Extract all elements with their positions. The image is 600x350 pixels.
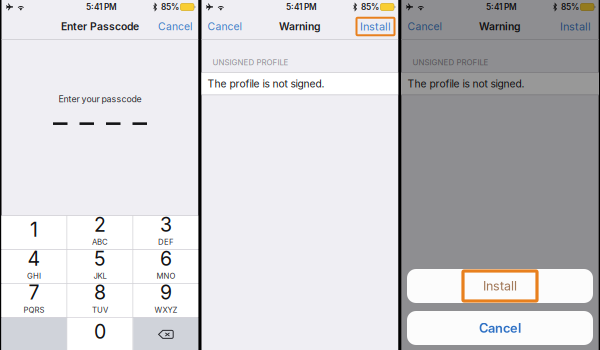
staticText: TUV bbox=[92, 305, 108, 315]
button[interactable]: 6 bbox=[133, 250, 199, 283]
staticText: 4 bbox=[27, 247, 40, 270]
staticText: JKL bbox=[93, 271, 106, 281]
staticText: The profile is not signed. bbox=[207, 77, 324, 90]
staticText: The profile is not signed. bbox=[407, 77, 524, 90]
staticText: Enter Passcode bbox=[61, 20, 139, 33]
staticText: 6 bbox=[160, 247, 172, 270]
button[interactable]: 3 bbox=[133, 216, 199, 249]
button[interactable]: Install bbox=[407, 269, 593, 303]
button[interactable]: 7 bbox=[1, 284, 67, 317]
staticText: 85% bbox=[361, 2, 379, 12]
staticText: 0 bbox=[94, 320, 106, 343]
staticText: WXYZ bbox=[154, 305, 177, 315]
staticText: DEF bbox=[158, 237, 174, 247]
button[interactable]: 4 bbox=[1, 250, 67, 283]
staticText: Warning bbox=[279, 20, 321, 33]
staticText: 7 bbox=[28, 281, 39, 304]
staticText: GHI bbox=[27, 271, 41, 281]
staticText: Cancel bbox=[479, 320, 521, 336]
staticText: 85% bbox=[561, 2, 579, 12]
button[interactable]: 8 bbox=[67, 284, 133, 317]
staticText: 5:41 PM bbox=[286, 2, 317, 12]
staticText: 1 bbox=[30, 218, 38, 242]
staticText: PQRS bbox=[23, 305, 44, 315]
button[interactable]: 2 bbox=[67, 216, 133, 249]
staticText: Cancel bbox=[207, 20, 242, 33]
staticText: 5:41 PM bbox=[486, 2, 517, 12]
staticText: Install bbox=[483, 278, 517, 294]
button[interactable]: 0 bbox=[67, 318, 133, 350]
staticText: ABC bbox=[92, 237, 108, 247]
staticText: 85% bbox=[161, 2, 179, 12]
staticText: 2 bbox=[94, 213, 106, 236]
button[interactable]: 9 bbox=[133, 284, 199, 317]
button[interactable]: Install bbox=[355, 17, 395, 35]
staticText: Cancel bbox=[407, 20, 442, 33]
staticText: 9 bbox=[160, 281, 172, 304]
button[interactable]: 1 bbox=[1, 216, 67, 249]
staticText: MNO bbox=[156, 271, 175, 281]
button[interactable]: The profile is not signed. bbox=[201, 73, 398, 94]
staticText: Enter your passcode bbox=[58, 94, 141, 104]
staticText: 5 bbox=[94, 247, 106, 270]
button[interactable]: Cancel bbox=[407, 311, 593, 345]
staticText: Install bbox=[360, 20, 391, 33]
button[interactable]: Delete bbox=[133, 318, 199, 350]
staticText: Install bbox=[560, 20, 591, 33]
button[interactable]: Cancel bbox=[404, 15, 445, 37]
staticText: 8 bbox=[94, 281, 106, 304]
staticText: 3 bbox=[160, 213, 172, 236]
button[interactable]: The profile is not signed. bbox=[401, 73, 598, 94]
button[interactable]: Install bbox=[555, 17, 595, 35]
button[interactable]: Cancel bbox=[155, 17, 195, 35]
staticText: UNSIGNED PROFILE bbox=[412, 58, 488, 67]
staticText: 5:41 PM bbox=[86, 2, 117, 12]
button[interactable]: Cancel bbox=[204, 15, 245, 37]
staticText: Cancel bbox=[158, 20, 193, 33]
staticText: UNSIGNED PROFILE bbox=[212, 58, 288, 67]
staticText: Warning bbox=[479, 20, 521, 33]
button[interactable]: 5 bbox=[67, 250, 133, 283]
